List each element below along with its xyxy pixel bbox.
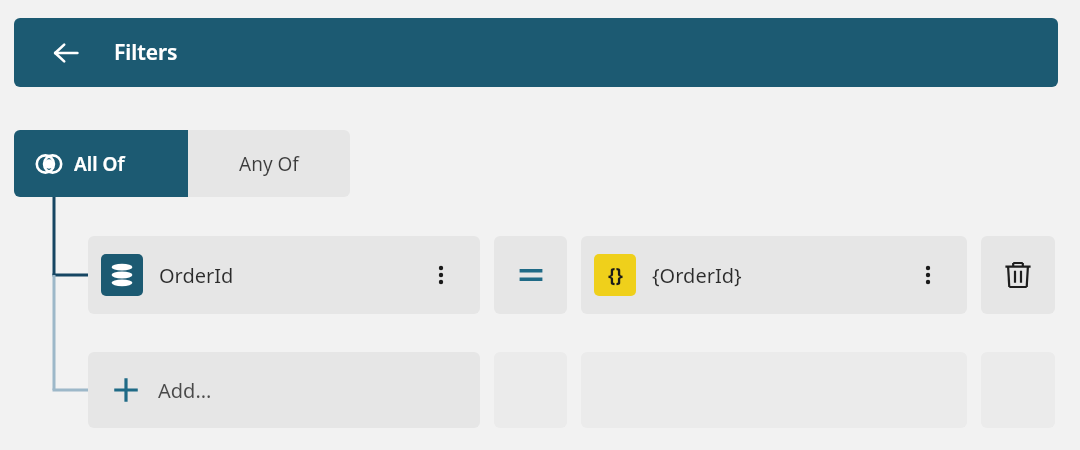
staticText: All Of [74,151,125,177]
button[interactable]: OrderId [88,236,480,314]
staticText: {OrderId} [652,262,742,289]
button[interactable]: Back [42,29,90,77]
staticText: Add... [158,377,212,404]
button[interactable]: Value options [911,258,945,292]
staticText: OrderId [159,262,234,289]
button[interactable]: Delete filter [981,236,1055,314]
button[interactable]: Any Of [188,130,350,197]
button[interactable]: Add... [88,352,480,428]
button[interactable]: Back [14,18,1058,87]
button[interactable]: {} [581,236,967,314]
button[interactable]: Field options [424,258,458,292]
staticText: {} [608,262,623,288]
button[interactable]: Equals operator [494,236,567,314]
staticText: Any Of [239,151,299,177]
staticText: Filters [114,38,178,67]
button[interactable]: All Of [14,130,188,197]
